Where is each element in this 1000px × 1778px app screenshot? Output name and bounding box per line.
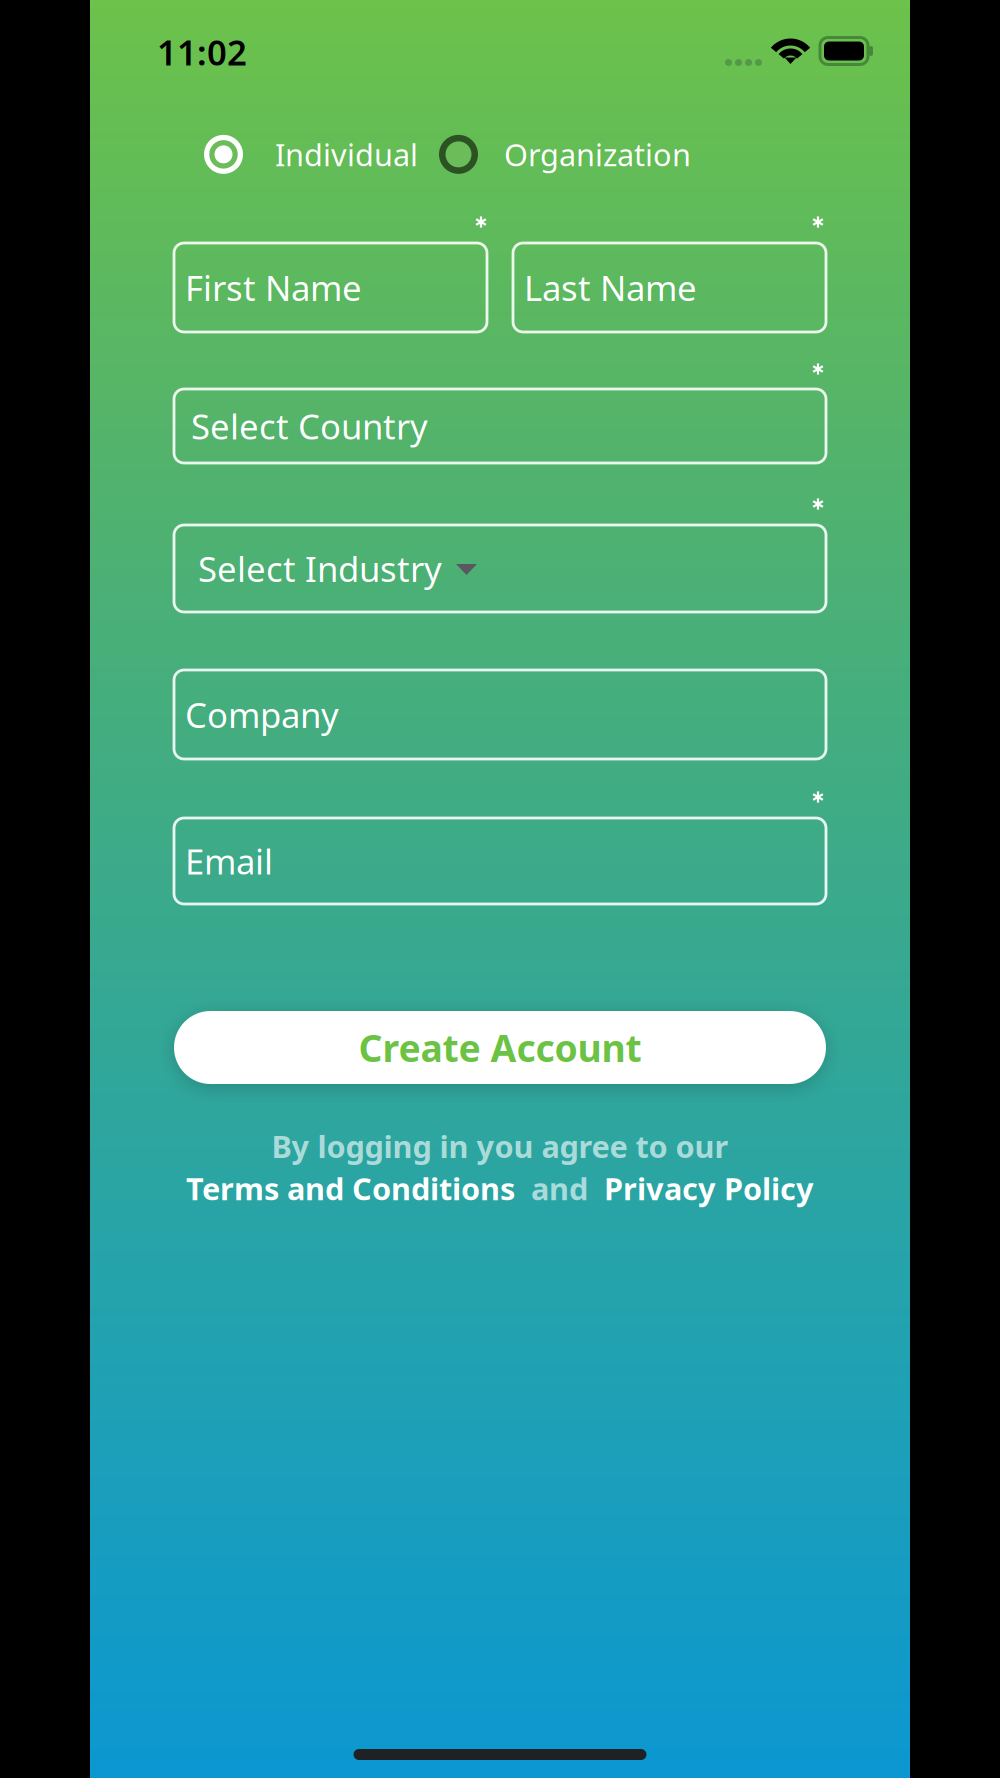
staticText: Email xyxy=(185,838,273,884)
button[interactable]: Company xyxy=(174,670,826,759)
staticText: First Name xyxy=(185,264,362,310)
staticText: Select Industry xyxy=(198,545,442,591)
button[interactable]: Last Name xyxy=(513,243,826,332)
staticText: and xyxy=(515,1168,604,1209)
staticText: Privacy Policy xyxy=(604,1168,814,1209)
staticText: Last Name xyxy=(524,264,697,310)
button[interactable]: Select Industry xyxy=(174,525,826,612)
button[interactable]: First Name xyxy=(174,243,487,332)
staticText: 11:02 xyxy=(157,29,247,75)
staticText: By logging in you agree to our xyxy=(271,1126,728,1166)
button[interactable]: Select Country xyxy=(174,389,826,463)
button[interactable]: Individual xyxy=(204,134,418,175)
staticText: Company xyxy=(185,691,339,737)
staticText: Create Account xyxy=(358,1023,641,1072)
staticText: Organization xyxy=(504,134,691,175)
staticText: Individual xyxy=(275,134,418,175)
button[interactable]: Privacy Policy xyxy=(604,1168,814,1209)
staticText: Terms and Conditions xyxy=(186,1168,515,1209)
button[interactable]: Terms and Conditions xyxy=(186,1168,515,1209)
button[interactable]: Email xyxy=(174,818,826,904)
button[interactable]: Organization xyxy=(439,134,691,175)
staticText: Select Country xyxy=(191,403,428,449)
button[interactable]: Create Account xyxy=(174,1011,826,1084)
